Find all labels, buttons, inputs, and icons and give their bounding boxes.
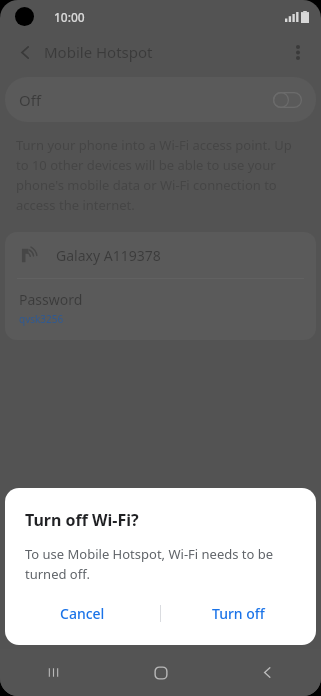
staticText: qvsk3256	[19, 312, 64, 326]
button[interactable]: Recents	[0, 649, 107, 696]
staticText: Turn off	[212, 604, 265, 623]
button[interactable]: Back	[214, 649, 321, 696]
staticText: Password	[19, 290, 83, 309]
staticText: Turn off Wi-Fi?	[25, 509, 139, 531]
button[interactable]: Back	[8, 35, 42, 69]
staticText: Cancel	[60, 604, 105, 623]
staticText: Turn your phone into a Wi-Fi access poin…	[16, 136, 305, 214]
button[interactable]: Galaxy A119378	[5, 232, 316, 278]
staticText: 10:00	[54, 9, 85, 25]
button[interactable]: Turn off	[161, 589, 316, 637]
button[interactable]: Cancel	[5, 589, 160, 637]
button[interactable]: Home	[107, 649, 214, 696]
staticText: To use Mobile Hotspot, Wi-Fi needs to be…	[25, 545, 294, 583]
button[interactable]: More options	[281, 35, 315, 69]
staticText: Mobile Hotspot	[44, 42, 153, 62]
staticText: Off	[19, 90, 42, 110]
button[interactable]: Password	[5, 279, 316, 340]
staticText: Galaxy A119378	[56, 246, 161, 265]
